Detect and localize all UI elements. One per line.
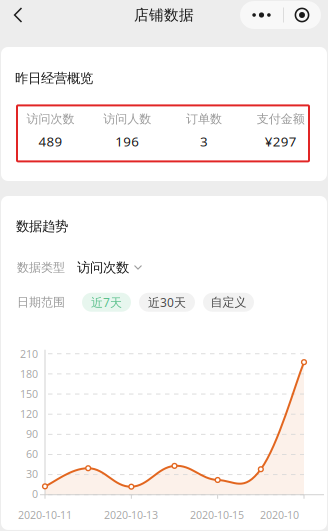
staticText: 昨日经营概览 [15, 70, 93, 86]
staticText: 60 [26, 447, 38, 461]
staticText: 150 [20, 387, 38, 401]
staticText: 196 [115, 132, 139, 150]
staticText: 访问次数 [26, 112, 74, 126]
button[interactable]: 近7天 [82, 293, 131, 312]
staticText: 订单数 [186, 112, 222, 126]
staticText: 访问人数 [103, 112, 151, 126]
staticText: 近30天 [148, 294, 186, 310]
staticText: 3 [200, 132, 208, 150]
button[interactable]: 近30天 [139, 293, 195, 312]
staticText: ¥297 [265, 132, 297, 150]
staticText: 数据类型 [17, 260, 65, 275]
button[interactable]: More [240, 1, 283, 29]
staticText: 120 [20, 407, 38, 421]
staticText: 210 [20, 347, 38, 361]
staticText: 日期范围 [17, 295, 65, 310]
button[interactable]: Back [0, 1, 36, 29]
staticText: 近7天 [91, 294, 122, 310]
staticText: 自定义 [210, 295, 246, 310]
button[interactable]: 自定义 [203, 293, 254, 312]
staticText: 2020-10-13 [104, 508, 158, 522]
staticText: 店铺数据 [134, 6, 194, 24]
staticText: 数据趋势 [16, 218, 68, 234]
staticText: 0 [32, 487, 38, 501]
staticText: 支付金额 [257, 112, 305, 126]
staticText: 90 [26, 427, 38, 441]
staticText: 30 [26, 467, 38, 481]
staticText: 2020-10-11 [18, 508, 72, 522]
staticText: 489 [38, 132, 62, 150]
staticText: 180 [20, 367, 38, 381]
staticText: 2020-10-15 [190, 508, 244, 522]
button[interactable]: Close [283, 1, 321, 29]
button[interactable]: 访问次数 [77, 259, 142, 276]
staticText: 2020-10 [260, 508, 299, 522]
staticText: 访问次数 [77, 259, 129, 276]
